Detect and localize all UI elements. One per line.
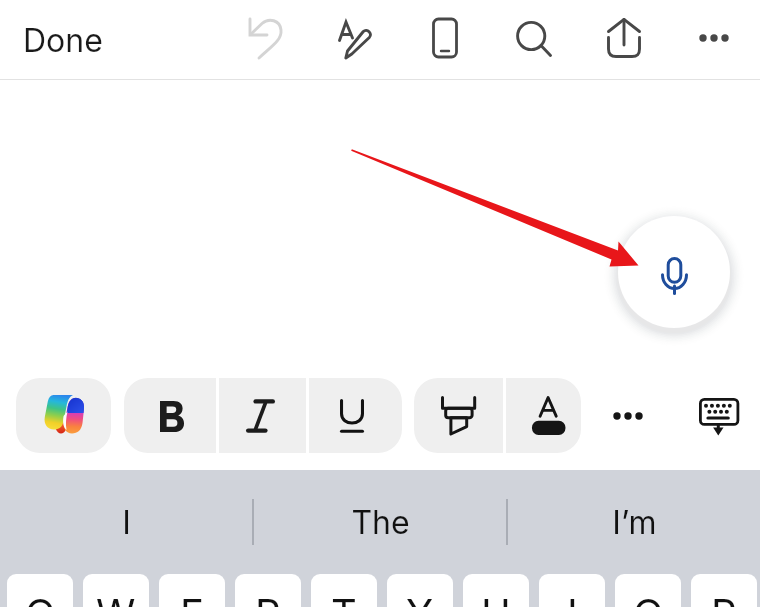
- button[interactable]: Italic: [219, 378, 306, 453]
- button[interactable]: Bold: [124, 378, 216, 453]
- staticText: Done: [23, 21, 103, 60]
- button[interactable]: More formatting: [602, 390, 654, 442]
- button[interactable]: Y: [387, 574, 453, 607]
- button[interactable]: Font colour: [506, 378, 581, 453]
- staticText: U: [481, 589, 511, 607]
- staticText: R: [255, 589, 281, 607]
- button[interactable]: W: [83, 574, 149, 607]
- button[interactable]: U: [463, 574, 529, 607]
- button[interactable]: I’m: [508, 470, 760, 574]
- button[interactable]: Search: [508, 15, 560, 67]
- button[interactable]: More options: [688, 12, 740, 64]
- staticText: T: [331, 589, 357, 607]
- staticText: I’m: [612, 503, 657, 542]
- staticText: The: [351, 503, 410, 542]
- button[interactable]: O: [615, 574, 681, 607]
- staticText: I: [567, 589, 578, 607]
- button[interactable]: Markup: [331, 15, 383, 67]
- button[interactable]: E: [159, 574, 225, 607]
- button[interactable]: I: [0, 470, 252, 574]
- button[interactable]: P: [691, 574, 757, 607]
- button[interactable]: Underline: [309, 378, 401, 453]
- button[interactable]: Highlight: [414, 378, 503, 453]
- button[interactable]: Hide keyboard: [692, 391, 744, 443]
- button[interactable]: Done: [23, 21, 103, 60]
- button[interactable]: The: [254, 470, 506, 574]
- button[interactable]: Q: [7, 574, 73, 607]
- staticText: Q: [25, 589, 56, 607]
- staticText: O: [633, 589, 664, 607]
- staticText: P: [711, 589, 737, 607]
- staticText: W: [96, 589, 136, 607]
- button[interactable]: Copilot: [16, 378, 111, 453]
- button[interactable]: Share: [598, 13, 650, 65]
- button[interactable]: I: [539, 574, 605, 607]
- button[interactable]: T: [311, 574, 377, 607]
- staticText: Y: [406, 589, 434, 607]
- button[interactable]: Mobile view: [419, 12, 471, 64]
- staticText: I: [122, 503, 131, 542]
- staticText: E: [180, 589, 205, 607]
- button[interactable]: Undo: [240, 14, 292, 66]
- button[interactable]: Dictate: [618, 216, 730, 328]
- button[interactable]: R: [235, 574, 301, 607]
